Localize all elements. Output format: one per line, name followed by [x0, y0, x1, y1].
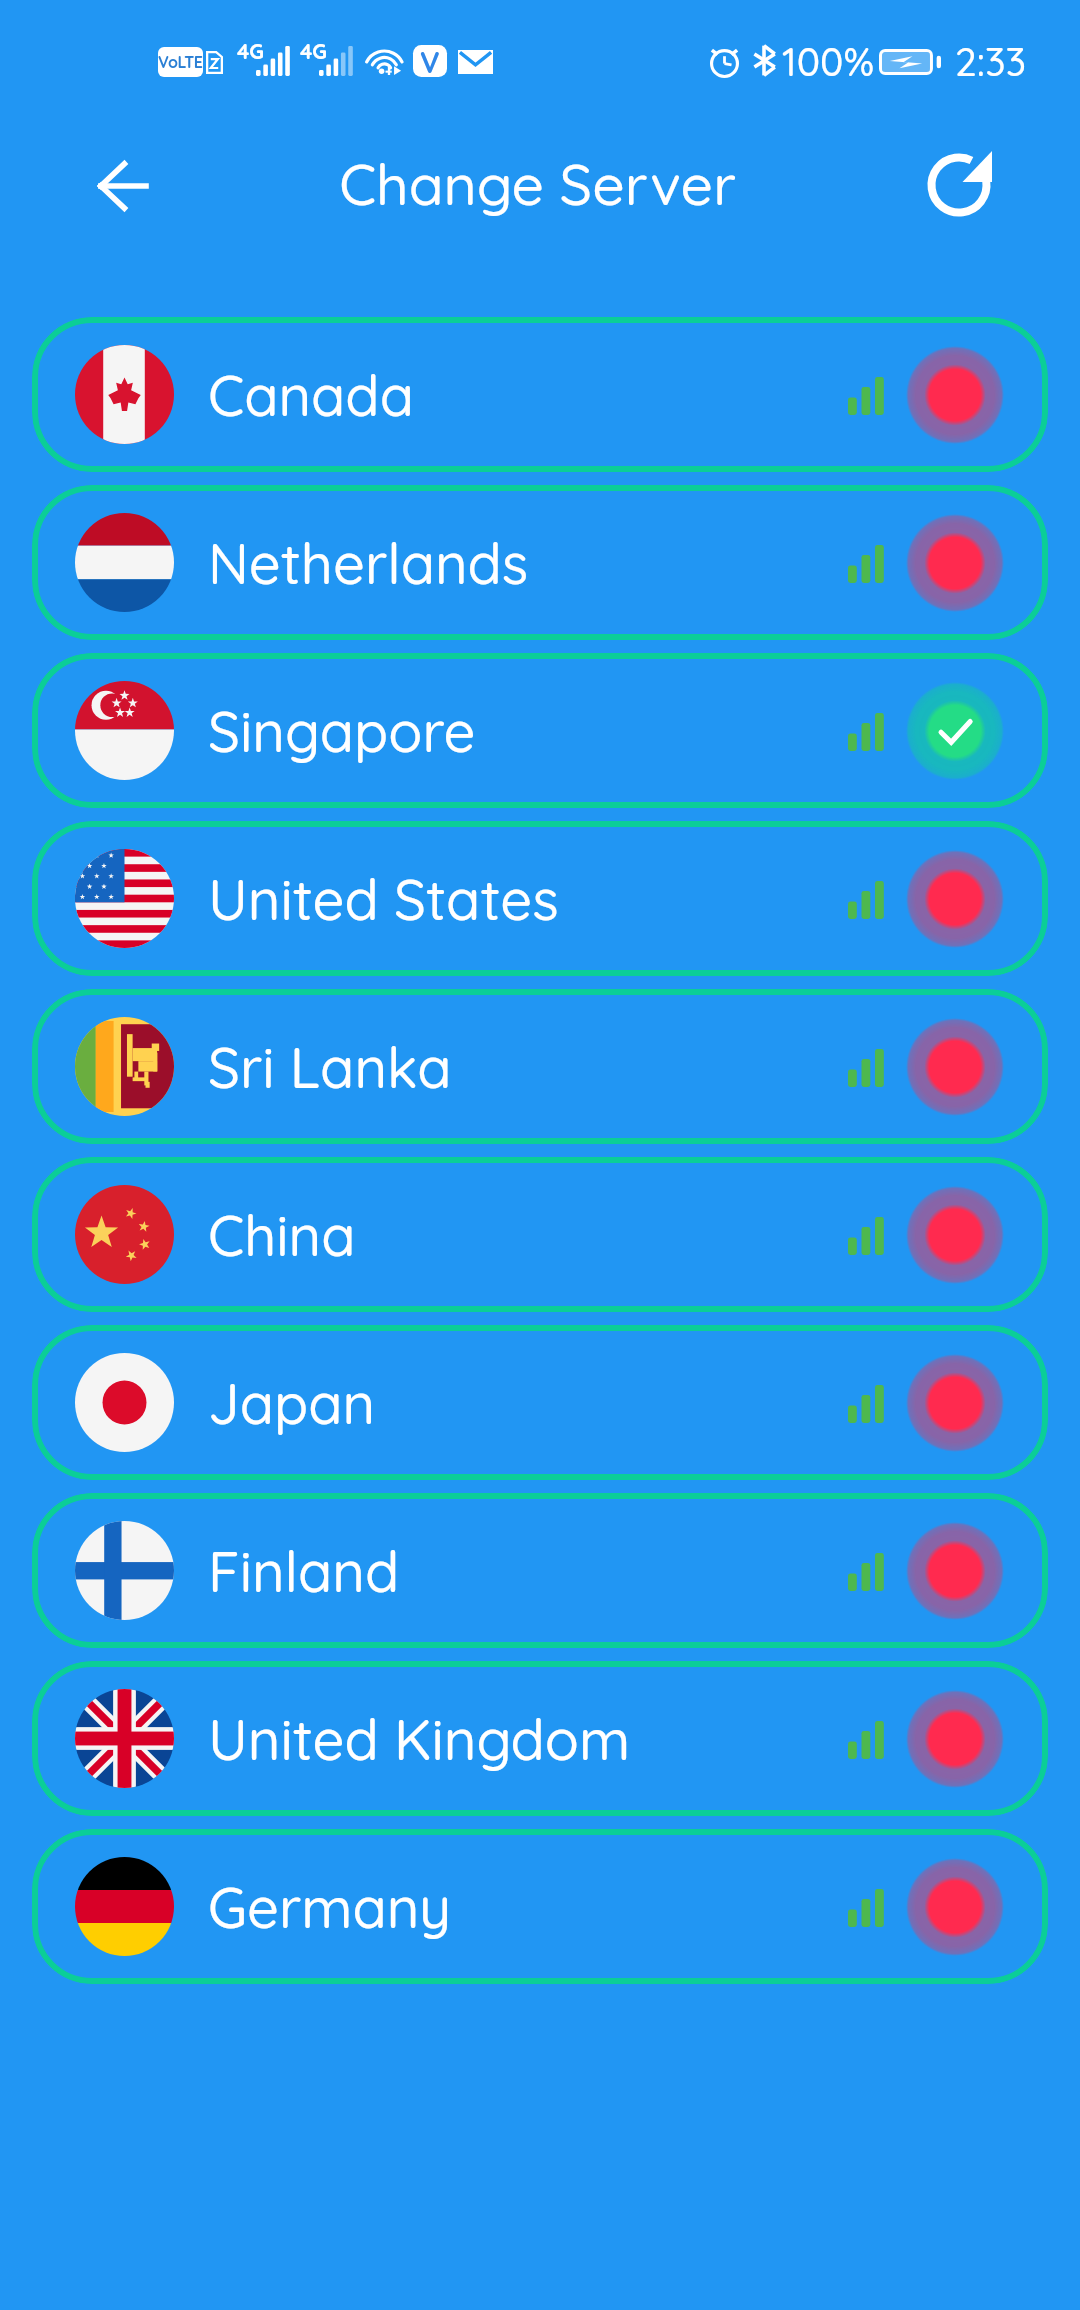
staticText: V [420, 44, 440, 76]
staticText: Sri Lanka [208, 1032, 452, 1102]
staticText: 4G [300, 38, 327, 64]
staticText: Canada [208, 360, 414, 430]
staticText: Singapore [208, 696, 476, 766]
button[interactable]: China [32, 1157, 1048, 1312]
button[interactable]: Sri Lanka [32, 989, 1048, 1144]
staticText: 2:33 [955, 37, 1027, 86]
button[interactable]: Germany [32, 1829, 1048, 1984]
staticText: 4G [237, 38, 264, 64]
button[interactable]: United States [32, 821, 1048, 976]
staticText: United States [208, 864, 559, 934]
staticText: Germany [208, 1872, 452, 1942]
staticText: VoLTE [158, 52, 203, 72]
staticText: Finland [208, 1536, 400, 1606]
staticText: Netherlands [208, 528, 529, 598]
staticText: United Kingdom [208, 1704, 631, 1774]
button[interactable]: Japan [32, 1325, 1048, 1480]
staticText: Change Server [339, 148, 736, 219]
button[interactable]: Finland [32, 1493, 1048, 1648]
button[interactable]: Back [70, 134, 174, 238]
staticText: China [208, 1200, 356, 1270]
button[interactable]: Netherlands [32, 485, 1048, 640]
button[interactable]: United Kingdom [32, 1661, 1048, 1816]
button[interactable]: Refresh [914, 138, 1018, 242]
staticText: 100% [782, 37, 875, 86]
button[interactable]: Singapore [32, 653, 1048, 808]
button[interactable]: Canada [32, 317, 1048, 472]
staticText: Japan [208, 1368, 376, 1438]
